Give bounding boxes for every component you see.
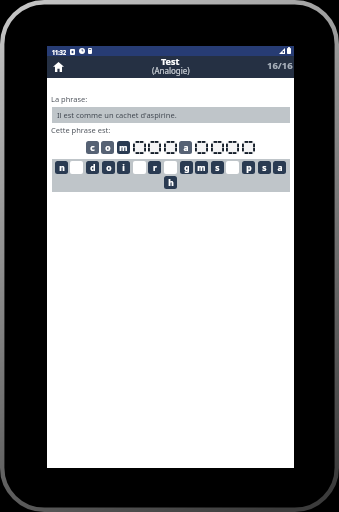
button[interactable]: Empty tile xyxy=(164,161,177,174)
button[interactable]: g xyxy=(180,161,193,174)
staticText: s xyxy=(215,162,220,174)
staticText: c xyxy=(90,142,95,154)
button[interactable]: Empty tile xyxy=(226,161,239,174)
button[interactable]: r xyxy=(148,161,161,174)
button[interactable]: m xyxy=(117,141,130,154)
button[interactable]: h xyxy=(164,176,177,189)
staticText: g xyxy=(184,162,190,174)
button[interactable]: Empty tile xyxy=(133,161,146,174)
staticText: 16/16 xyxy=(267,59,293,72)
staticText: (Analogie) xyxy=(152,65,190,76)
staticText: a xyxy=(183,142,189,154)
button[interactable]: a xyxy=(273,161,286,174)
button[interactable]: o xyxy=(102,161,115,174)
button[interactable]: Empty letter slot xyxy=(133,141,146,154)
button[interactable]: p xyxy=(242,161,255,174)
button[interactable]: s xyxy=(211,161,224,174)
staticText: 11:32 xyxy=(52,48,66,58)
button[interactable]: Empty letter slot xyxy=(148,141,161,154)
staticText: o xyxy=(105,142,111,154)
button[interactable]: Empty letter slot xyxy=(226,141,239,154)
button[interactable]: s xyxy=(258,161,271,174)
staticText: Il est comme un cachet d'aspirine. xyxy=(57,110,177,120)
staticText: n xyxy=(59,162,65,174)
button[interactable]: Empty letter slot xyxy=(242,141,255,154)
button[interactable]: i xyxy=(117,161,130,174)
button[interactable]: Empty letter slot xyxy=(164,141,177,154)
staticText: r xyxy=(153,162,157,174)
button[interactable]: d xyxy=(86,161,99,174)
staticText: o xyxy=(106,162,112,174)
button[interactable]: n xyxy=(55,161,68,174)
staticText: i xyxy=(122,162,125,174)
button[interactable]: o xyxy=(101,141,114,154)
staticText: d xyxy=(90,162,96,174)
button[interactable]: a xyxy=(179,141,192,154)
button[interactable]: m xyxy=(195,161,208,174)
staticText: s xyxy=(262,162,267,174)
staticText: m xyxy=(197,162,206,174)
staticText: La phrase: xyxy=(51,94,88,104)
staticText: Test xyxy=(161,55,180,67)
staticText: Cette phrase est: xyxy=(51,125,111,135)
staticText: m xyxy=(119,142,128,154)
button[interactable]: Empty tile xyxy=(70,161,83,174)
staticText: h xyxy=(168,177,174,189)
staticText: p xyxy=(246,162,252,174)
button[interactable]: c xyxy=(86,141,99,154)
button[interactable]: Empty letter slot xyxy=(195,141,208,154)
button[interactable]: Empty letter slot xyxy=(211,141,224,154)
button[interactable]: Home xyxy=(47,56,69,78)
staticText: a xyxy=(277,162,283,174)
